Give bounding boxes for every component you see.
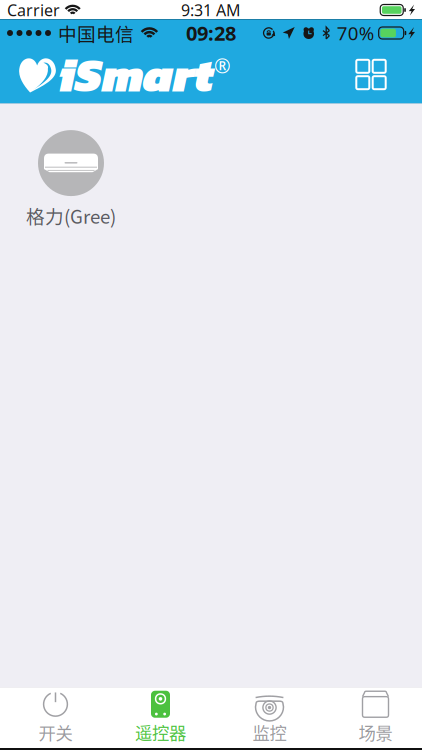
- staticText: 开关: [38, 720, 72, 745]
- button[interactable]: 监控: [210, 687, 329, 748]
- button[interactable]: All devices: [341, 46, 401, 103]
- button[interactable]: 场景: [329, 687, 422, 748]
- staticText: 中国电信: [58, 19, 134, 46]
- button[interactable]: 遥控器: [111, 687, 210, 748]
- button[interactable]: 开关: [0, 687, 111, 748]
- staticText: 遥控器: [135, 720, 186, 745]
- staticText: 监控: [252, 720, 286, 745]
- staticText: 9:31 AM: [181, 0, 241, 21]
- staticText: ®: [214, 52, 231, 79]
- staticText: 09:28: [186, 19, 236, 47]
- staticText: 场景: [358, 720, 392, 745]
- staticText: Carrier: [7, 0, 60, 21]
- button[interactable]: 格力(Gree): [19, 104, 123, 236]
- staticText: 格力(Gree): [26, 202, 116, 229]
- staticText: 70%: [337, 20, 375, 46]
- staticText: iSmart: [58, 39, 213, 110]
